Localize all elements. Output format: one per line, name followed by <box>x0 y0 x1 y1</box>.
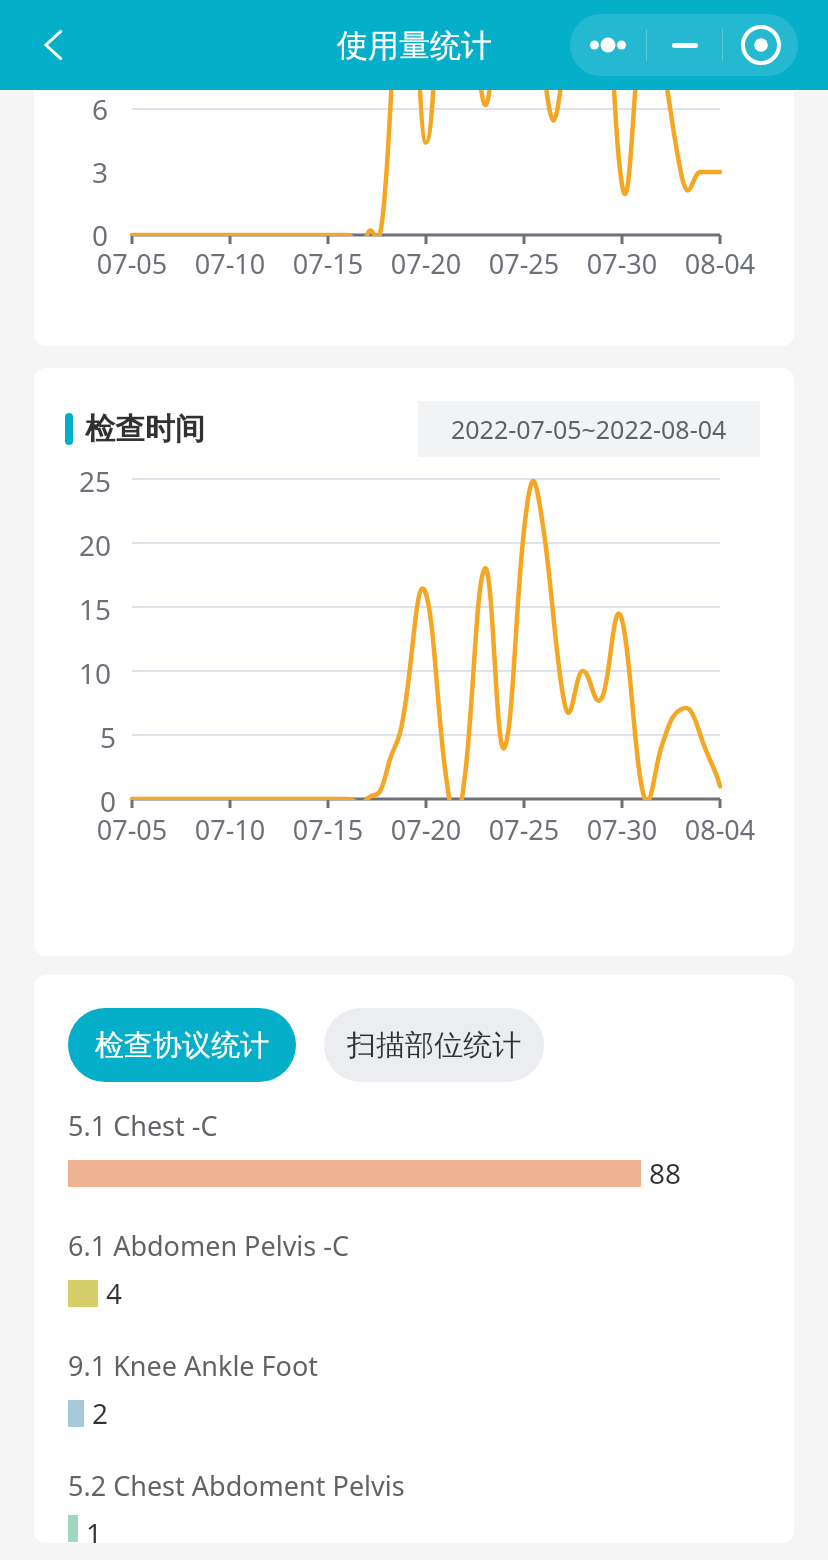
staticText: 2022-07-05~2022-08-04 <box>451 412 727 446</box>
staticText: 07-20 <box>377 245 475 282</box>
staticText: 07-25 <box>475 811 573 848</box>
staticText: 10 <box>79 654 112 692</box>
staticText: 07-10 <box>181 811 279 848</box>
staticText: 5 <box>100 718 117 756</box>
staticText: 6.1 Abdomen Pelvis -C <box>68 1227 350 1264</box>
staticText: 07-15 <box>279 811 377 848</box>
staticText: 07-30 <box>573 245 671 282</box>
staticText: 07-30 <box>573 811 671 848</box>
staticText: 4 <box>106 1274 123 1312</box>
button[interactable]: 9.1 Knee Ankle Foot <box>34 1347 794 1432</box>
button[interactable]: 检查协议统计 <box>68 1008 296 1082</box>
staticText: 88 <box>649 1154 682 1192</box>
staticText: 9.1 Knee Ankle Foot <box>68 1347 319 1384</box>
button[interactable]: Back <box>22 13 86 77</box>
button[interactable]: 5.2 Chest Abdoment Pelvis <box>34 1467 794 1543</box>
staticText: 使用量统计 <box>337 26 492 65</box>
staticText: 07-10 <box>181 245 279 282</box>
button[interactable]: 6.1 Abdomen Pelvis -C <box>34 1227 794 1312</box>
button[interactable]: Minimize <box>647 14 722 76</box>
staticText: 07-20 <box>377 811 475 848</box>
staticText: 20 <box>79 526 112 564</box>
staticText: 0 <box>92 216 109 254</box>
staticText: 07-05 <box>83 811 181 848</box>
staticText: 08-04 <box>671 245 769 282</box>
staticText: 检查协议统计 <box>95 1027 269 1064</box>
button[interactable]: 2022-07-05~2022-08-04 <box>418 401 760 457</box>
staticText: 5.2 Chest Abdoment Pelvis <box>68 1467 405 1504</box>
staticText: 15 <box>79 590 112 628</box>
staticText: 检查时间 <box>85 410 205 448</box>
staticText: 3 <box>92 153 109 191</box>
staticText: 07-25 <box>475 245 573 282</box>
button[interactable]: 5.1 Chest -C <box>34 1107 794 1192</box>
button[interactable]: More <box>570 14 646 76</box>
staticText: 扫描部位统计 <box>347 1027 521 1064</box>
staticText: 0 <box>100 782 117 820</box>
staticText: 6 <box>92 90 109 128</box>
staticText: 25 <box>79 462 112 500</box>
staticText: 07-15 <box>279 245 377 282</box>
staticText: 1 <box>86 1514 103 1543</box>
staticText: 07-05 <box>83 245 181 282</box>
staticText: 2 <box>92 1394 109 1432</box>
button[interactable]: Close <box>723 14 798 76</box>
staticText: 08-04 <box>671 811 769 848</box>
button[interactable]: 扫描部位统计 <box>324 1008 544 1082</box>
staticText: 5.1 Chest -C <box>68 1107 218 1144</box>
